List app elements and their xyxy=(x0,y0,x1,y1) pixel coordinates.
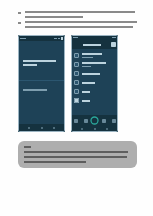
button[interactable]: Add device xyxy=(71,35,118,132)
button[interactable] xyxy=(18,35,65,132)
button[interactable] xyxy=(74,89,115,94)
button[interactable] xyxy=(74,53,115,58)
button[interactable]: Automation xyxy=(99,116,108,125)
button[interactable] xyxy=(74,98,115,103)
button[interactable] xyxy=(74,62,115,67)
button[interactable] xyxy=(18,141,137,168)
button[interactable]: Settings xyxy=(109,116,118,125)
button[interactable] xyxy=(74,71,115,76)
button[interactable]: Home xyxy=(71,116,80,125)
button[interactable]: Scan xyxy=(90,116,99,125)
button[interactable] xyxy=(74,80,115,85)
button[interactable]: Devices xyxy=(81,116,90,125)
button[interactable]: Add device xyxy=(111,42,116,47)
